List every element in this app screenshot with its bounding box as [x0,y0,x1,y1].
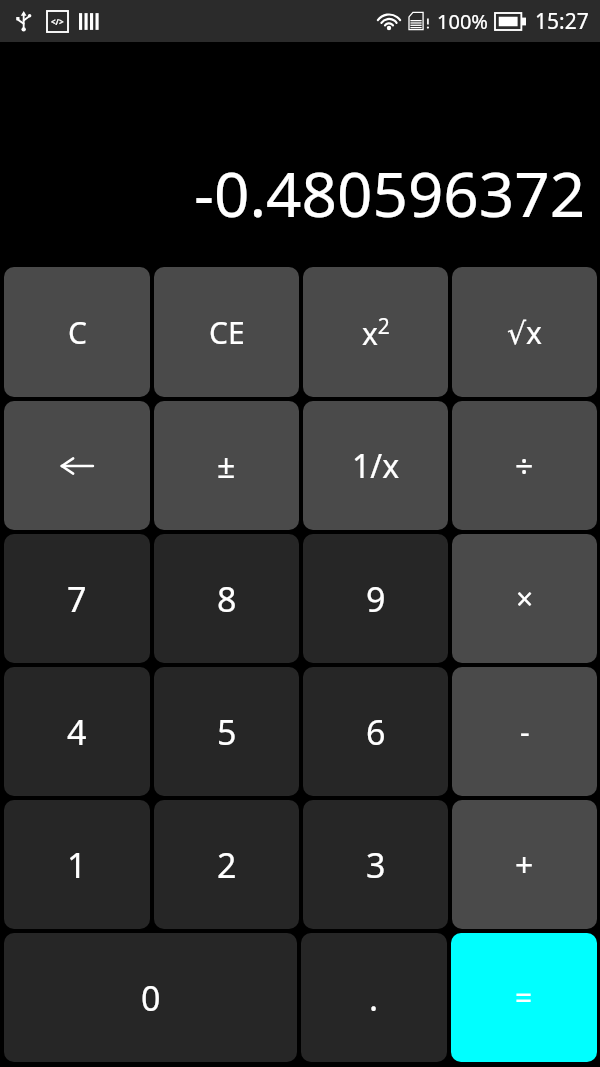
button[interactable]: Backspace [4,401,150,530]
staticText: 7 [67,576,87,622]
staticText: 6 [366,709,386,755]
button[interactable]: 9 [303,534,448,663]
staticText: - [520,711,530,752]
staticText: 2 [217,842,237,888]
button[interactable]: 1/x [303,401,448,530]
staticText: 4 [67,709,87,755]
button[interactable]: 2 [154,800,299,929]
staticText: + [515,843,534,887]
button[interactable]: √x [452,267,597,397]
button[interactable]: + [452,800,597,929]
button[interactable]: . [301,933,447,1062]
button[interactable]: 1 [4,800,150,929]
staticText: 1/x [352,444,400,488]
staticText: 9 [366,576,386,622]
button[interactable]: C [4,267,150,397]
staticText: CE [209,312,245,353]
button[interactable]: × [452,534,597,663]
staticText: 15:27 [535,7,589,36]
staticText: = [515,977,533,1018]
button[interactable]: ÷ [452,401,597,530]
staticText: √x [507,312,542,353]
button[interactable]: CE [154,267,299,397]
button[interactable]: 0 [4,933,297,1062]
staticText: -0.480596372 [194,151,586,235]
staticText: . [369,975,379,1021]
button[interactable]: 5 [154,667,299,796]
button[interactable]: ± [154,401,299,530]
staticText: 0 [141,975,161,1021]
button[interactable]: 3 [303,800,448,929]
button[interactable]: 7 [4,534,150,663]
button[interactable]: = [451,933,597,1062]
staticText: 5 [217,709,237,755]
staticText: ± [217,444,236,488]
button[interactable]: 8 [154,534,299,663]
button[interactable]: 6 [303,667,448,796]
staticText: 100% [437,8,488,35]
button[interactable]: - [452,667,597,796]
staticText: ÷ [515,444,534,488]
staticText: × [516,578,534,619]
staticText: 8 [217,576,237,622]
staticText: 3 [366,842,386,888]
staticText: x2 [362,312,390,353]
staticText: C [68,312,87,353]
staticText: </> [51,16,64,27]
staticText: 1 [67,842,87,888]
button[interactable]: 4 [4,667,150,796]
button[interactable]: x2 [303,267,448,397]
